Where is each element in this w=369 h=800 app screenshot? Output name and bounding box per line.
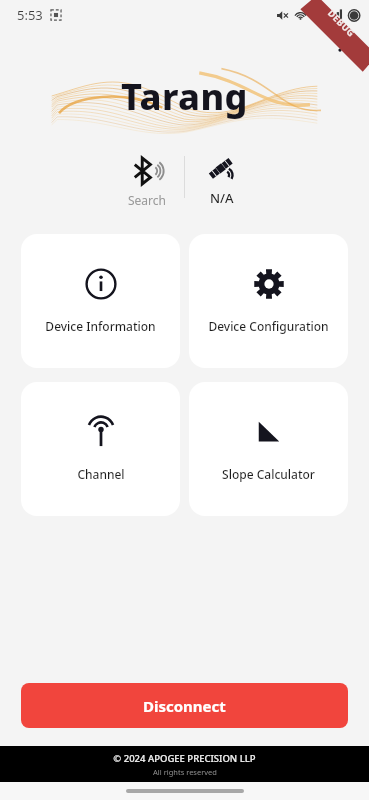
staticText: DEBUG <box>326 7 358 39</box>
button[interactable]: Device Configuration <box>189 234 348 368</box>
staticText: Device Configuration <box>208 318 329 334</box>
button[interactable]: More options <box>323 30 357 60</box>
staticText: All rights reserved <box>153 767 217 777</box>
staticText: Channel <box>77 466 125 482</box>
staticText: 5:53 <box>17 6 43 24</box>
staticText: Search <box>128 192 166 208</box>
staticText: N/A <box>210 189 234 207</box>
staticText: Disconnect <box>143 696 226 716</box>
staticText: © 2024 APOGEE PRECISION LLP <box>113 752 256 765</box>
staticText: Tarang <box>121 72 248 121</box>
button[interactable]: Search <box>110 154 184 208</box>
staticText: Device Information <box>45 318 156 334</box>
button[interactable]: Slope Calculator <box>189 382 348 516</box>
button[interactable]: Disconnect <box>21 683 348 728</box>
staticText: Slope Calculator <box>222 466 315 482</box>
button[interactable]: Device Information <box>21 234 180 368</box>
button[interactable]: Channel <box>21 382 180 516</box>
button[interactable]: N/A <box>185 154 259 207</box>
